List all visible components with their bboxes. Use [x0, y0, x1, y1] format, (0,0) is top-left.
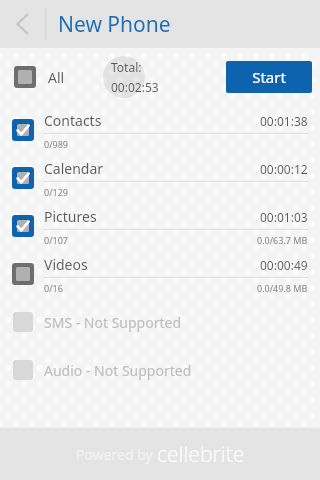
- button[interactable]: Calendar: [0, 154, 320, 202]
- staticText: Pictures: [44, 207, 97, 226]
- button[interactable]: SMS - Not Supported: [0, 298, 320, 346]
- staticText: Start: [252, 67, 286, 87]
- staticText: 00:00:49: [260, 257, 308, 273]
- staticText: All: [48, 68, 65, 87]
- staticText: 00:00:12: [260, 161, 308, 177]
- staticText: Videos: [44, 255, 88, 274]
- staticText: 00:02:53: [111, 79, 159, 95]
- staticText: 0/129: [44, 186, 68, 198]
- staticText: Total:: [111, 59, 142, 75]
- staticText: 0.0/63.7 MB: [257, 234, 308, 246]
- button[interactable]: Audio - Not Supported: [0, 346, 320, 394]
- staticText: Contacts: [44, 111, 102, 130]
- button[interactable]: Pictures: [0, 202, 320, 250]
- staticText: 00:01:38: [260, 113, 308, 129]
- staticText: SMS - Not Supported: [44, 313, 182, 332]
- staticText: Powered by: [76, 445, 157, 464]
- staticText: Audio - Not Supported: [44, 361, 192, 380]
- staticText: 0/107: [44, 234, 68, 246]
- button[interactable]: Back: [0, 0, 45, 48]
- staticText: 0/16: [44, 282, 63, 294]
- button[interactable]: Start: [226, 61, 312, 93]
- staticText: 0.0/49.8 MB: [257, 282, 308, 294]
- button[interactable]: Videos: [0, 250, 320, 298]
- staticText: Calendar: [44, 159, 104, 178]
- staticText: cellebrite: [157, 440, 245, 469]
- button[interactable]: Contacts: [0, 106, 320, 154]
- staticText: 0/989: [44, 138, 68, 150]
- button[interactable]: All: [0, 48, 65, 106]
- staticText: New Phone: [58, 10, 171, 39]
- staticText: 00:01:03: [260, 209, 308, 225]
